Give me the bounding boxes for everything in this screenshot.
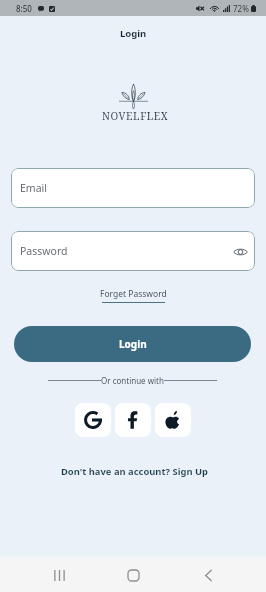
button[interactable]: Back: [194, 559, 222, 592]
staticText: NOVELFLEX: [102, 109, 169, 123]
staticText: Email: [20, 181, 47, 195]
button[interactable]: Don't have an account? Sign Up: [61, 465, 208, 478]
button[interactable]: Recents: [45, 559, 73, 592]
button[interactable]: Sign in with Apple: [155, 403, 191, 437]
button[interactable]: Sign in with Google: [75, 403, 111, 437]
staticText: Login: [119, 337, 147, 351]
staticText: 8:50: [16, 3, 32, 14]
button[interactable]: Login: [14, 326, 251, 362]
staticText: 72%: [233, 3, 249, 14]
button[interactable]: Show password: [232, 245, 248, 259]
staticText: Login: [120, 27, 147, 40]
staticText: Forget Password: [100, 288, 167, 300]
button[interactable]: Home: [119, 559, 147, 592]
staticText: Or continue with: [101, 375, 164, 386]
button[interactable]: Forget Password: [100, 288, 167, 303]
button[interactable]: Password: [11, 231, 255, 271]
button[interactable]: Email: [11, 168, 255, 208]
button[interactable]: Sign in with Facebook: [115, 403, 151, 437]
staticText: Password: [20, 244, 68, 258]
